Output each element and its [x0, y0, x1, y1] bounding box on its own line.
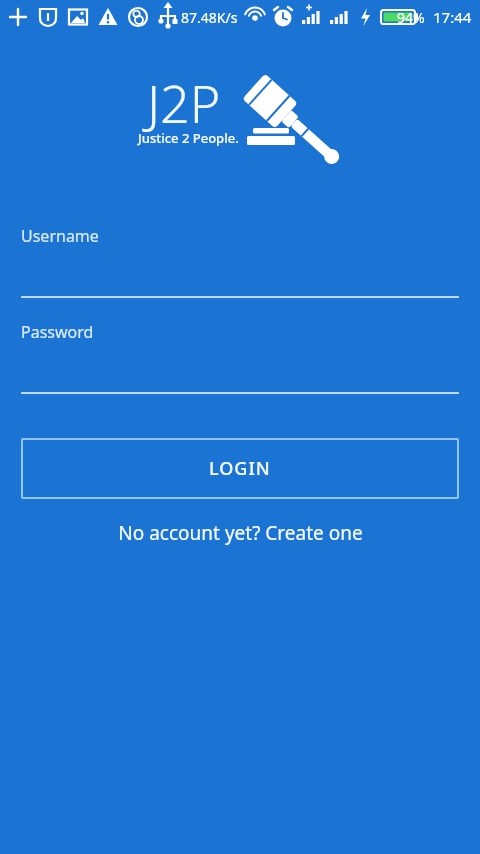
button[interactable]: Username	[21, 225, 459, 247]
staticText: No account yet? Create one	[118, 520, 363, 546]
staticText: 87.48K/s	[181, 8, 238, 27]
staticText: 94%	[397, 8, 425, 27]
staticText: Justice 2 People.	[138, 129, 239, 147]
staticText: Username	[21, 225, 99, 247]
staticText: 17:44	[433, 7, 472, 27]
button[interactable]: Password	[21, 321, 459, 343]
staticText: J2P	[147, 67, 221, 138]
staticText: LOGIN	[209, 456, 271, 481]
staticText: Password	[21, 321, 94, 343]
button[interactable]: No account yet? Create one	[21, 513, 459, 553]
button[interactable]: LOGIN	[21, 438, 459, 499]
